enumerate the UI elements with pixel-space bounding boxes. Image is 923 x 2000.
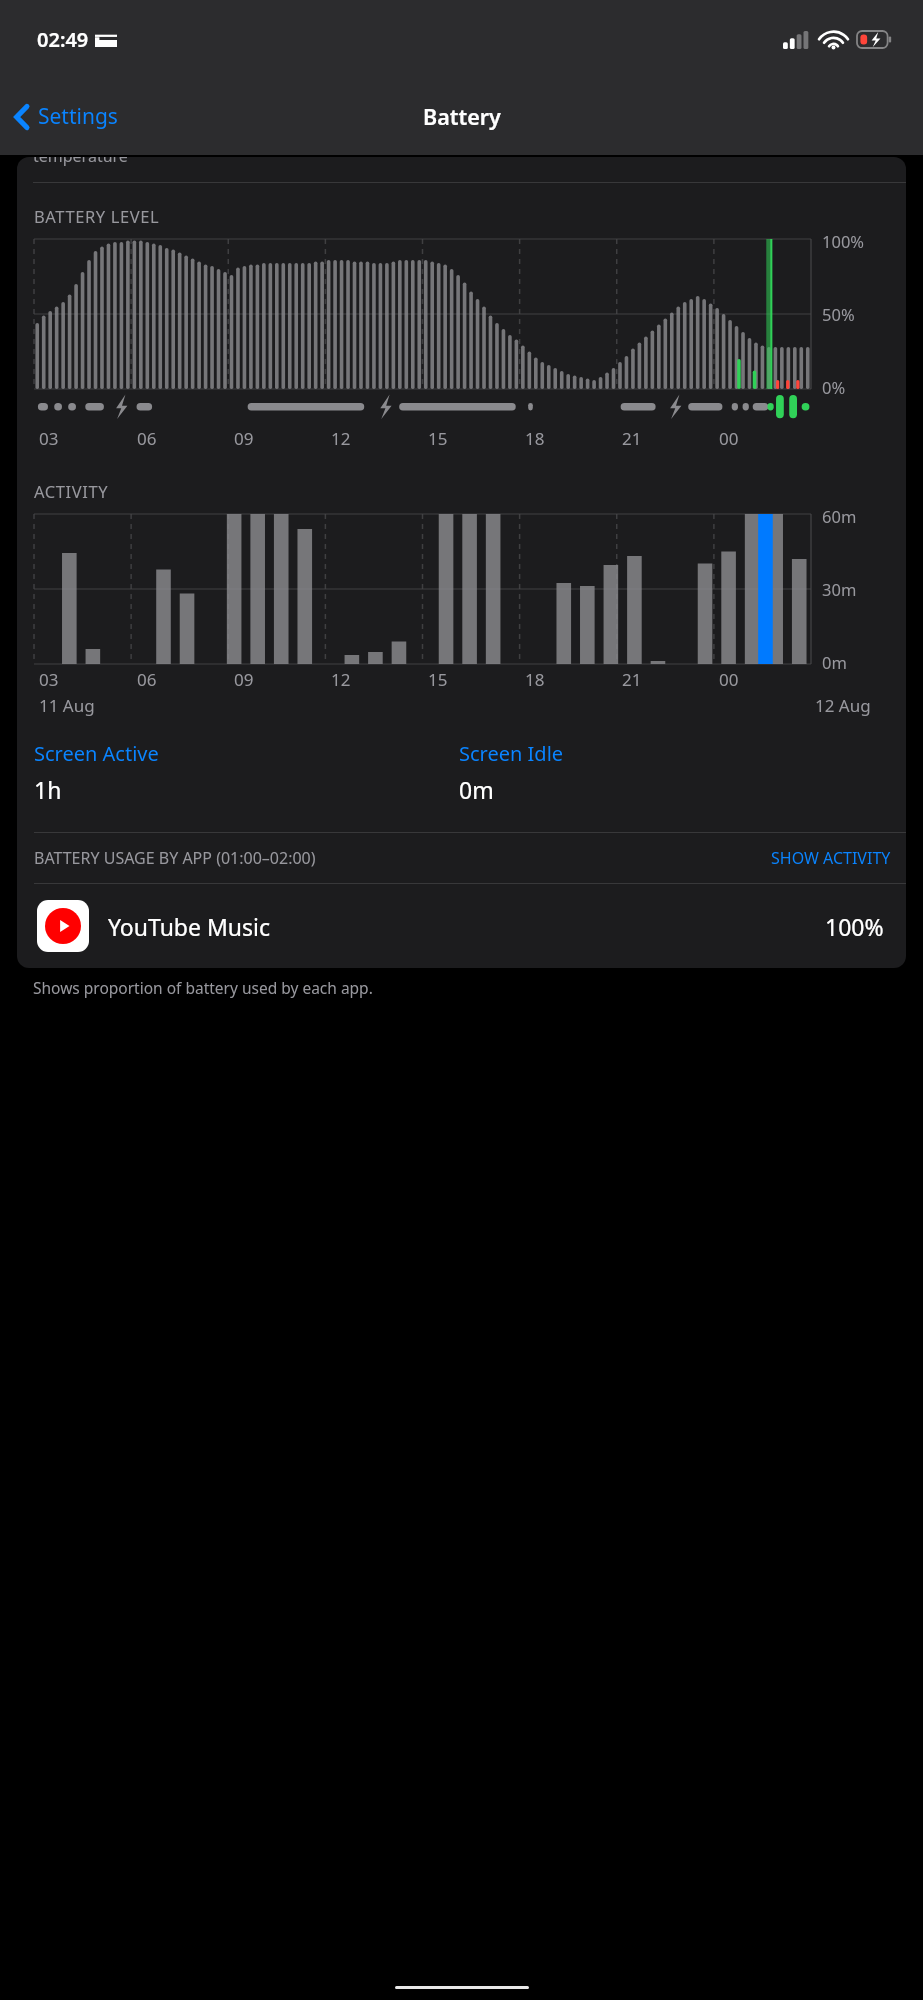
staticText: 03: [39, 668, 59, 691]
staticText: Shows proportion of battery used by each…: [33, 977, 903, 998]
staticText: 21: [622, 668, 642, 691]
staticText: 00: [719, 668, 739, 691]
button[interactable]: YouTube Music: [17, 884, 906, 968]
button[interactable]: Settings: [11, 96, 122, 137]
staticText: 0m: [459, 774, 494, 805]
staticText: temperature: [33, 157, 128, 167]
staticText: 15: [428, 427, 448, 450]
staticText: 12: [331, 427, 351, 450]
staticText: 02:49: [37, 26, 89, 53]
staticText: 18: [525, 427, 545, 450]
staticText: 12: [331, 668, 351, 691]
staticText: 12 Aug: [815, 694, 871, 717]
staticText: 00: [719, 427, 739, 450]
staticText: 1h: [34, 774, 62, 805]
button[interactable]: SHOW ACTIVITY: [771, 847, 891, 869]
staticText: YouTube Music: [108, 911, 271, 942]
staticText: 03: [39, 427, 59, 450]
staticText: 11 Aug: [39, 694, 95, 717]
staticText: 15: [428, 668, 448, 691]
staticText: 18: [525, 668, 545, 691]
staticText: Battery: [423, 102, 501, 131]
staticText: 60m: [822, 505, 857, 527]
staticText: 09: [234, 668, 254, 691]
staticText: ACTIVITY: [34, 480, 109, 502]
staticText: 100%: [825, 911, 884, 942]
staticText: 0m: [822, 651, 847, 673]
staticText: 21: [622, 427, 642, 450]
staticText: BATTERY LEVEL: [34, 205, 160, 227]
staticText: 06: [137, 427, 157, 450]
staticText: Screen Active: [34, 740, 159, 767]
staticText: 06: [137, 668, 157, 691]
staticText: 0%: [822, 376, 846, 398]
staticText: 30m: [822, 578, 857, 600]
staticText: Settings: [38, 102, 118, 131]
staticText: 100%: [822, 230, 865, 252]
staticText: 09: [234, 427, 254, 450]
staticText: BATTERY USAGE BY APP (01:00–02:00): [34, 847, 316, 869]
staticText: SHOW ACTIVITY: [771, 847, 891, 869]
staticText: 50%: [822, 303, 855, 325]
staticText: Screen Idle: [459, 740, 564, 767]
